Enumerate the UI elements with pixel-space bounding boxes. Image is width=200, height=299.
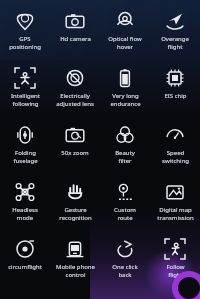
button[interactable]: Electrically adjusted lens xyxy=(50,65,100,121)
staticText: Speed switching xyxy=(162,149,189,165)
staticText: Gesture recognition xyxy=(59,206,92,222)
staticText: Hd camera xyxy=(60,35,91,43)
button[interactable]: Gesture recognition xyxy=(50,179,100,235)
staticText: Digital map transmission xyxy=(157,206,194,222)
staticText: GPS positioning xyxy=(9,35,41,51)
staticText: circumflight xyxy=(8,263,42,271)
button[interactable]: Headless mode xyxy=(0,179,50,235)
button[interactable]: Optical flow hover xyxy=(100,8,150,64)
button[interactable]: Start xyxy=(172,271,200,299)
staticText: Headless mode xyxy=(12,206,38,222)
button[interactable]: One click back xyxy=(100,236,150,292)
button[interactable]: EIS chip xyxy=(150,65,200,121)
button[interactable]: Follow flight xyxy=(150,236,200,292)
staticText: EIS chip xyxy=(164,92,187,100)
staticText: Folding fuselage xyxy=(13,149,38,165)
staticText: Follow flight xyxy=(166,263,185,279)
button[interactable]: Speed switching xyxy=(150,122,200,178)
button[interactable]: 50x zoom xyxy=(50,122,100,178)
staticText: Optical flow hover xyxy=(108,35,142,51)
button[interactable]: GPS positioning xyxy=(0,8,50,64)
button[interactable]: Hd camera xyxy=(50,8,100,64)
button[interactable]: Custom route xyxy=(100,179,150,235)
staticText: Electrically adjusted lens xyxy=(56,92,94,108)
button[interactable]: Mobile phone control xyxy=(50,236,100,292)
button[interactable]: Beauty filter xyxy=(100,122,150,178)
button[interactable]: Intelligent following xyxy=(0,65,50,121)
staticText: One click back xyxy=(112,263,138,279)
staticText: Intelligent following xyxy=(11,92,40,108)
staticText: Very long endurance xyxy=(110,92,141,108)
button[interactable]: Digital map transmission xyxy=(150,179,200,235)
staticText: Overange flight xyxy=(161,35,189,51)
button[interactable]: Folding fuselage xyxy=(0,122,50,178)
button[interactable]: Very long endurance xyxy=(100,65,150,121)
button[interactable]: circumflight xyxy=(0,236,50,292)
staticText: 50x zoom xyxy=(61,149,89,157)
staticText: Beauty filter xyxy=(115,149,135,165)
button[interactable]: Overange flight xyxy=(150,8,200,64)
staticText: Custom route xyxy=(114,206,136,222)
staticText: Mobile phone control xyxy=(56,263,95,279)
